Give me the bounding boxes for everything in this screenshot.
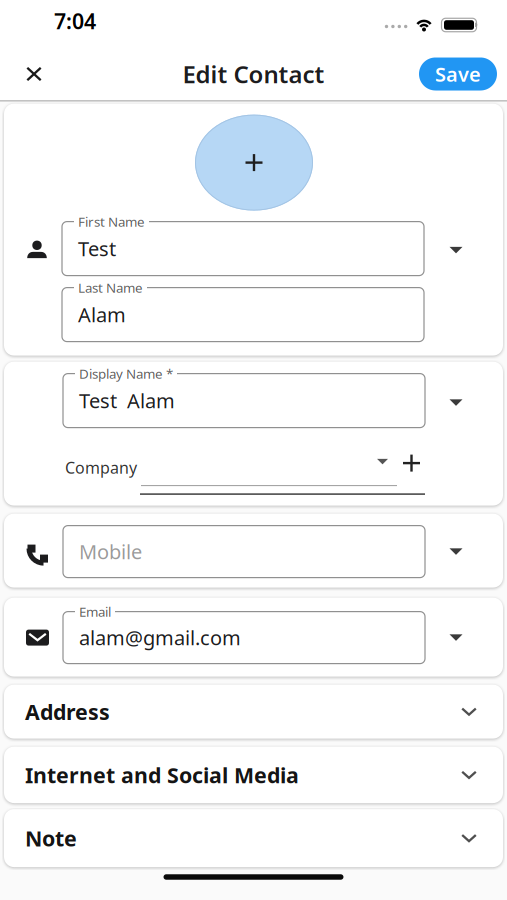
staticText: Internet and Social Media [25, 761, 299, 789]
staticText: Test [78, 235, 116, 262]
button[interactable]: Select display name [441, 391, 470, 414]
staticText: Save [435, 61, 481, 87]
staticText: Address [25, 697, 110, 726]
button[interactable]: Save [419, 57, 497, 90]
button[interactable]: Select phone label [441, 540, 470, 563]
staticText: Email [79, 603, 111, 620]
button[interactable]: Close [16, 56, 52, 91]
staticText: Note [25, 824, 77, 852]
staticText: alam@gmail.com [79, 624, 241, 651]
staticText: Mobile [79, 538, 142, 565]
staticText: Alam [78, 301, 126, 328]
staticText: Test Alam [79, 387, 175, 414]
staticText: Company [65, 457, 137, 478]
staticText: Last Name [78, 279, 143, 296]
button[interactable]: Address [4, 685, 503, 739]
staticText: First Name [78, 213, 145, 230]
staticText: 7:04 [54, 7, 96, 35]
staticText: Edit Contact [182, 58, 324, 90]
staticText: Display Name * [79, 365, 173, 382]
button[interactable]: Note [4, 809, 503, 867]
button[interactable]: Internet and Social Media [4, 747, 503, 803]
button[interactable]: Select label [441, 239, 470, 261]
button[interactable]: Add photo [195, 115, 313, 211]
button[interactable]: Select email label [441, 626, 470, 649]
button[interactable]: Select company [371, 453, 394, 470]
button[interactable]: Add company [397, 449, 426, 478]
